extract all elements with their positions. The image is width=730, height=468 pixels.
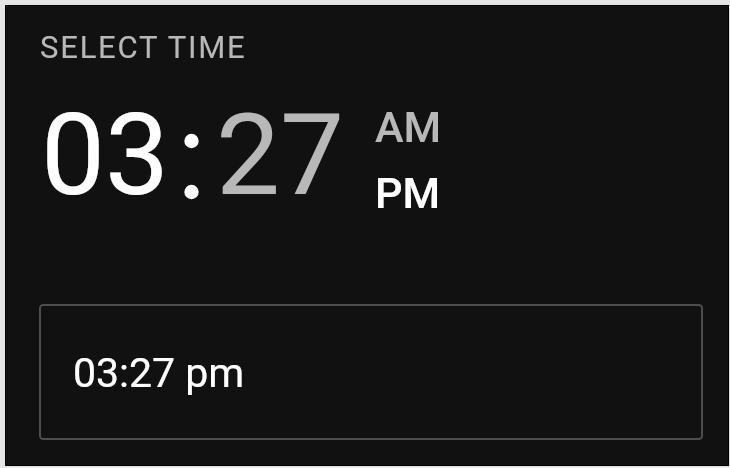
- button[interactable]: AM: [375, 102, 442, 152]
- button[interactable]: 27: [216, 88, 345, 222]
- staticText: 03: [41, 88, 170, 222]
- button[interactable]: 03:27 pm: [39, 304, 703, 440]
- button[interactable]: PM: [375, 168, 441, 218]
- staticText: AM: [375, 102, 442, 152]
- staticText: SELECT TIME: [40, 29, 247, 65]
- button[interactable]: 03: [41, 88, 170, 222]
- staticText: PM: [375, 168, 441, 218]
- staticText: 27: [216, 88, 345, 222]
- staticText: 03:27 pm: [73, 349, 245, 397]
